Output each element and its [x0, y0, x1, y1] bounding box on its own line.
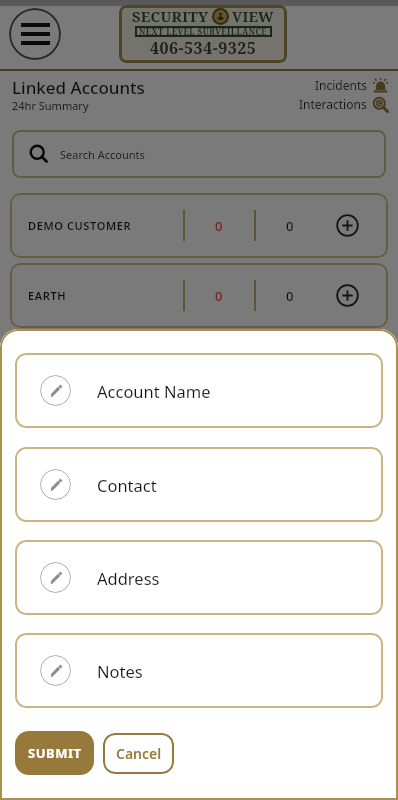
staticText: 0 [215, 217, 223, 235]
button[interactable]: Notes [15, 633, 383, 708]
staticText: Search Accounts [60, 147, 145, 162]
button[interactable]: DEMO CUSTOMER [10, 193, 388, 258]
button[interactable] [336, 284, 359, 307]
staticText: 24hr Summary [12, 98, 89, 113]
button[interactable]: Incidents [280, 76, 388, 94]
staticText: Interactions [299, 96, 367, 112]
button[interactable]: SUBMIT [15, 731, 94, 775]
staticText: 0 [286, 217, 294, 235]
staticText: Cancel [116, 744, 162, 763]
staticText: Address [97, 567, 160, 589]
button[interactable]: Interactions [240, 95, 388, 113]
staticText: 0 [286, 287, 294, 305]
staticText: Contact [97, 474, 157, 496]
button[interactable]: Search Accounts [12, 130, 386, 178]
button[interactable]: EARTH [10, 263, 388, 328]
staticText: 406-534-9325 [150, 37, 257, 59]
staticText: VIEW [232, 6, 274, 26]
button[interactable]: Account Name [15, 353, 383, 428]
staticText: Linked Accounts [12, 76, 145, 99]
staticText: NEXT LEVEL SURVEILLANCE [139, 26, 268, 37]
button[interactable]: Contact [15, 447, 383, 522]
staticText: 0 [215, 287, 223, 305]
button[interactable]: Cancel [103, 733, 174, 774]
staticText: SECURITY [132, 6, 209, 26]
staticText: EARTH [28, 288, 67, 303]
button[interactable]: Address [15, 540, 383, 615]
staticText: Incidents [315, 77, 367, 93]
staticText: SUBMIT [28, 744, 82, 762]
staticText: Account Name [97, 380, 211, 402]
staticText: Notes [97, 660, 143, 682]
button[interactable] [336, 214, 359, 237]
button[interactable]: SECURITY [119, 5, 287, 63]
staticText: DEMO CUSTOMER [28, 218, 132, 233]
button[interactable] [9, 8, 61, 60]
